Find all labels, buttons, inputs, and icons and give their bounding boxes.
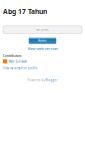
staticText: View my complete profile bbox=[3, 66, 38, 70]
button[interactable]: Home bbox=[29, 37, 56, 44]
staticText: View web version bbox=[27, 46, 57, 51]
staticText: Powered by bbox=[28, 78, 45, 82]
button[interactable]: View my complete profile bbox=[3, 66, 38, 70]
staticText: Abg 17 Tahun bbox=[3, 7, 47, 16]
staticText: Home bbox=[38, 39, 47, 42]
staticText: Blogger bbox=[45, 78, 57, 82]
button[interactable]: View web version bbox=[0, 46, 85, 51]
staticText: Mami Susilawati bbox=[8, 60, 27, 63]
staticText: No posts. bbox=[36, 28, 49, 31]
staticText: Contributors bbox=[3, 54, 21, 58]
